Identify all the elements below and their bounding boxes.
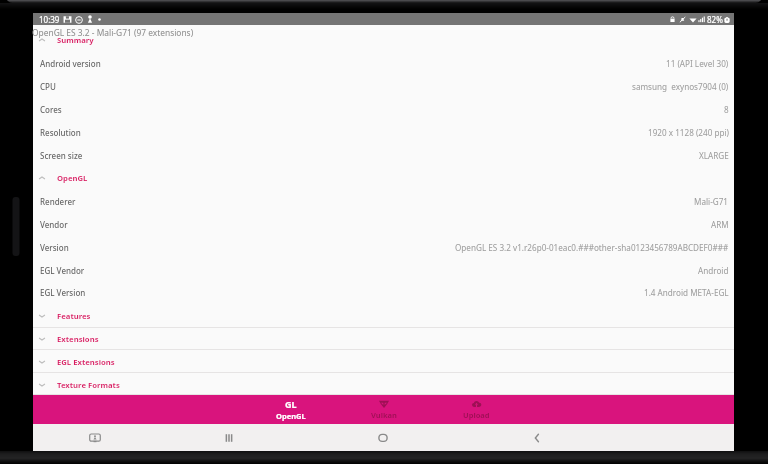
staticText: Resolution bbox=[40, 127, 81, 138]
staticText: Vulkan bbox=[371, 410, 397, 420]
staticText: 1920 x 1128 (240 ppi) bbox=[648, 127, 729, 138]
button[interactable]: EGL Version bbox=[33, 281, 734, 304]
button[interactable]: Cores bbox=[33, 98, 734, 121]
staticText: ARM bbox=[711, 219, 729, 230]
button[interactable]: EGL Vendor bbox=[33, 259, 734, 282]
button[interactable]: Extensions bbox=[33, 328, 734, 350]
button[interactable]: CPU bbox=[33, 75, 734, 98]
staticText: OpenGL bbox=[57, 173, 88, 183]
staticText: Screen size bbox=[40, 150, 83, 161]
button[interactable]: EGL Extensions bbox=[33, 351, 734, 373]
button[interactable]: Version bbox=[33, 236, 734, 259]
staticText: 10:39 bbox=[39, 14, 60, 25]
button[interactable]: Resolution bbox=[33, 121, 734, 144]
staticText: 11 (API Level 30) bbox=[666, 58, 729, 69]
staticText: Texture Formats bbox=[57, 380, 120, 390]
button[interactable]: Recent apps bbox=[212, 424, 246, 451]
staticText: Android version bbox=[40, 58, 101, 69]
staticText: OpenGL ES 3.2 v1.r26p0-01eac0.###other-s… bbox=[455, 242, 729, 253]
staticText: OpenGL ES 3.2 - Mali-G71 (97 extensions) bbox=[32, 27, 194, 38]
button[interactable]: Renderer bbox=[33, 190, 734, 213]
button[interactable]: Summary bbox=[33, 29, 734, 51]
staticText: Renderer bbox=[40, 196, 76, 207]
staticText: XLARGE bbox=[699, 150, 729, 161]
button[interactable]: OpenGL bbox=[33, 167, 734, 189]
button[interactable]: Vendor bbox=[33, 213, 734, 236]
staticText: OpenGL bbox=[276, 411, 306, 421]
staticText: EGL Extensions bbox=[57, 357, 115, 367]
staticText: Mali-G71 bbox=[694, 196, 729, 207]
staticText: Android bbox=[698, 265, 729, 276]
staticText: Cores bbox=[40, 104, 62, 115]
staticText: 8 bbox=[724, 104, 729, 115]
staticText: Features bbox=[57, 311, 91, 321]
staticText: Vendor bbox=[40, 219, 68, 230]
button[interactable]: Vulkan bbox=[337, 395, 430, 424]
button[interactable]: Back bbox=[520, 424, 554, 451]
staticText: Summary bbox=[57, 35, 94, 45]
button[interactable]: Upload bbox=[430, 395, 523, 424]
button[interactable]: GL bbox=[244, 395, 337, 424]
staticText: Extensions bbox=[57, 334, 99, 344]
staticText: Version bbox=[40, 242, 69, 253]
button[interactable]: Texture Formats bbox=[33, 374, 734, 396]
button[interactable]: Features bbox=[33, 305, 734, 327]
staticText: CPU bbox=[40, 81, 56, 92]
staticText: samsung exynos7904 (0) bbox=[632, 81, 729, 92]
button[interactable]: Home bbox=[366, 424, 400, 451]
staticText: Upload bbox=[463, 410, 490, 420]
staticText: EGL Version bbox=[40, 287, 86, 298]
staticText: EGL Vendor bbox=[40, 265, 85, 276]
button[interactable]: Android version bbox=[33, 52, 734, 75]
staticText: GL bbox=[285, 398, 297, 410]
button[interactable]: Screen size bbox=[33, 144, 734, 167]
button[interactable]: Screenshot bbox=[78, 424, 112, 451]
staticText: 82% bbox=[707, 14, 723, 25]
staticText: 1.4 Android META-EGL bbox=[644, 287, 729, 298]
